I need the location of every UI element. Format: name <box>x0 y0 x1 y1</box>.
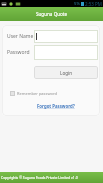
button[interactable]: Remember password <box>10 91 58 96</box>
staticText: User Name <box>7 33 34 40</box>
button[interactable] <box>34 45 98 60</box>
staticText: Copyrights © Suguna Foods Private Limite… <box>1 175 78 180</box>
button[interactable]: Login <box>34 66 98 79</box>
button[interactable]: Forgot Password? <box>37 103 75 109</box>
staticText: Login <box>60 70 73 76</box>
staticText: 5% <box>74 1 80 7</box>
button[interactable] <box>34 30 98 43</box>
staticText: Suguna Quote <box>36 11 68 17</box>
staticText: 2:53 PM <box>85 1 102 7</box>
staticText: Forgot Password? <box>37 103 75 109</box>
staticText: Remember password <box>17 91 58 96</box>
staticText: Password <box>7 49 30 56</box>
